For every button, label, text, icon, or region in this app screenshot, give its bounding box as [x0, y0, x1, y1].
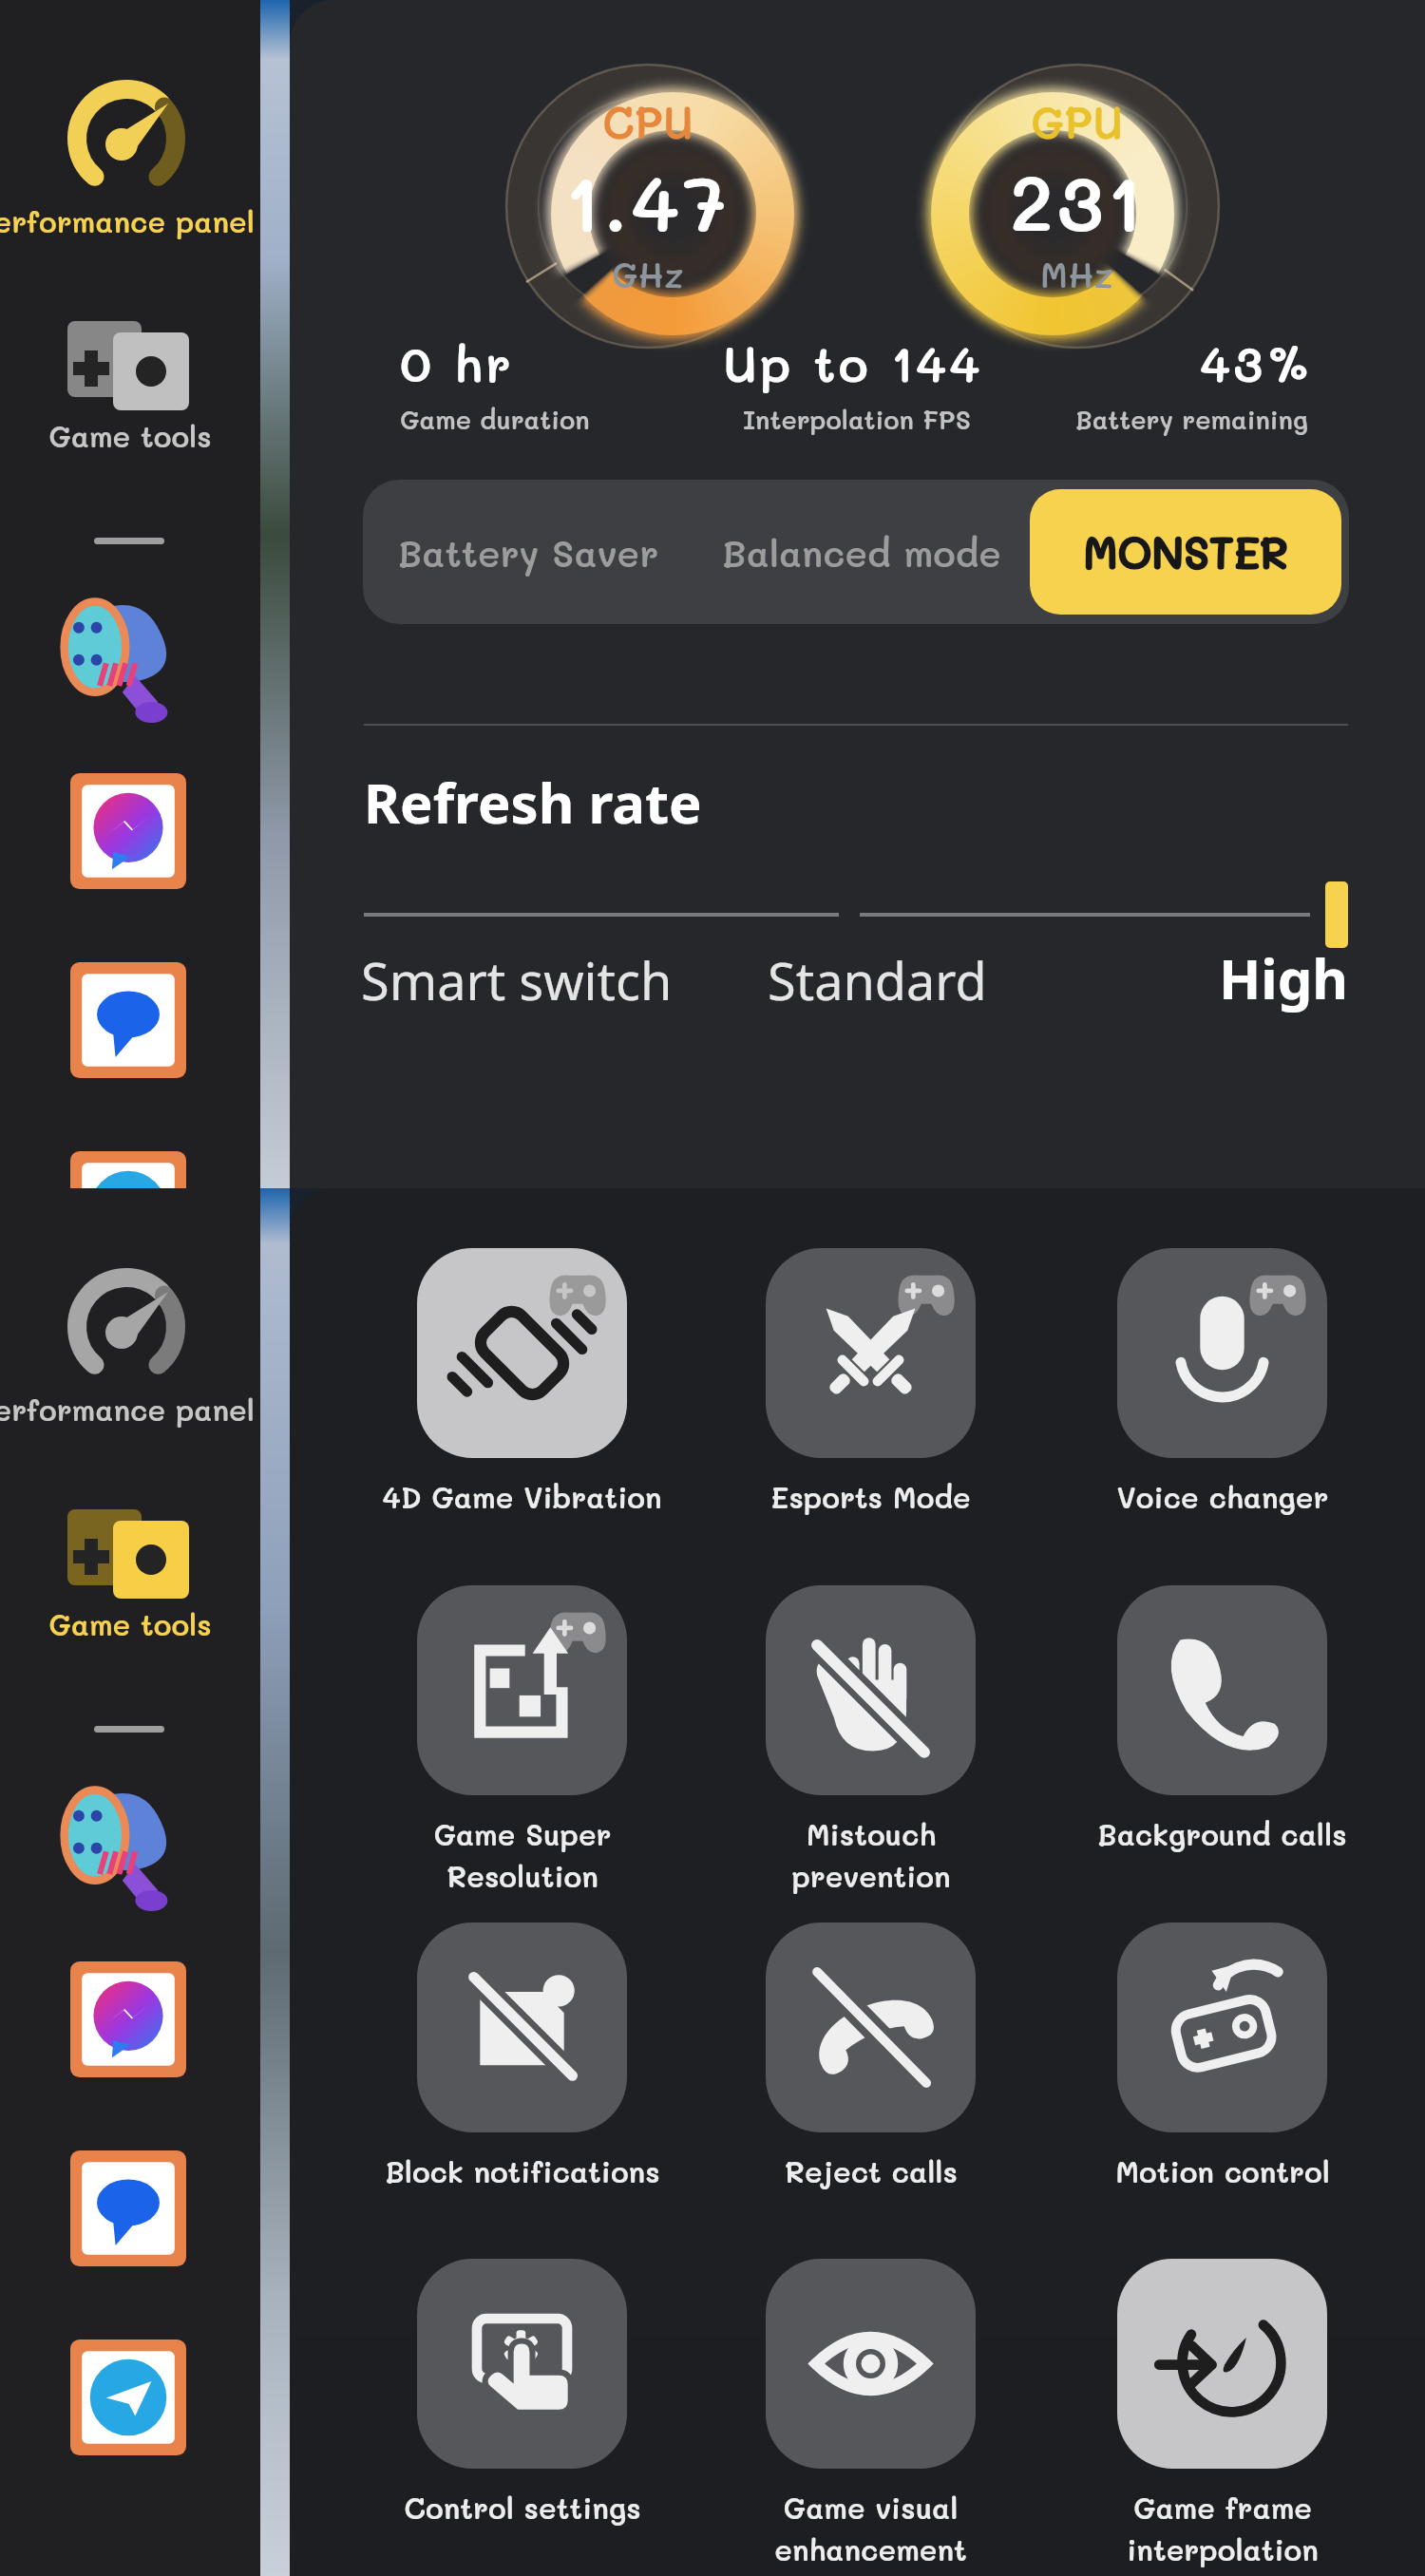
button[interactable]: Game tools — [0, 1483, 260, 1701]
staticText: 43% — [1200, 331, 1315, 395]
staticText: Performance panel — [0, 201, 259, 239]
button[interactable]: Game frame interpolation — [1048, 2259, 1396, 2567]
staticText: CPU — [602, 93, 693, 150]
staticText: 0 hr — [400, 331, 514, 395]
staticText: Smart switch — [361, 945, 673, 1015]
button[interactable]: Background calls — [1048, 1585, 1396, 1852]
staticText: High — [1219, 940, 1349, 1015]
staticText: 231 — [1010, 150, 1146, 252]
staticText: Game visual enhancement — [774, 2488, 967, 2567]
staticText: Up to 144 — [723, 331, 983, 395]
button[interactable]: Performance panel — [0, 76, 260, 294]
button[interactable]: Game tools — [0, 294, 260, 513]
button[interactable]: Reject calls — [696, 1923, 1045, 2189]
staticText: 4D Game Vibration — [382, 1477, 662, 1515]
button[interactable]: Mistouch prevention — [696, 1585, 1045, 1894]
button[interactable]: Control settings — [348, 2259, 696, 2526]
button[interactable]: Performance panel — [0, 1264, 260, 1483]
staticText: GPU — [1031, 93, 1124, 150]
button[interactable]: Balanced mode — [693, 480, 1030, 624]
staticText: Esports Mode — [770, 1477, 971, 1515]
staticText: Game tools — [0, 416, 263, 454]
staticText: Game duration — [400, 403, 590, 436]
staticText: Motion control — [1115, 2151, 1330, 2189]
staticText: GHz — [612, 252, 684, 296]
button[interactable]: Motion control — [1048, 1923, 1396, 2189]
staticText: 1.47 — [565, 150, 731, 252]
staticText: Battery Saver — [329, 528, 728, 577]
button[interactable]: Block notifications — [348, 1923, 696, 2189]
staticText: MHz — [1040, 252, 1114, 296]
staticText: Block notifications — [385, 2151, 660, 2189]
staticText: Game Super Resolution — [433, 1814, 612, 1894]
button[interactable]: Battery Saver — [363, 480, 693, 624]
staticText: Mistouch prevention — [791, 1814, 951, 1894]
staticText: Standard — [768, 945, 987, 1015]
button[interactable]: Game Super Resolution — [348, 1585, 696, 1894]
staticText: Interpolation FPS — [743, 403, 971, 436]
staticText: Refresh rate — [364, 765, 702, 840]
button[interactable]: Esports Mode — [696, 1248, 1045, 1515]
staticText: Voice changer — [1116, 1477, 1329, 1515]
button[interactable]: 4D Game Vibration — [348, 1248, 696, 1515]
button[interactable]: MONSTER — [1030, 489, 1341, 615]
staticText: Battery remaining — [1075, 403, 1308, 436]
staticText: Control settings — [404, 2488, 641, 2526]
staticText: MONSTER — [1083, 523, 1288, 580]
button[interactable]: Game visual enhancement — [696, 2259, 1045, 2567]
staticText: Game frame interpolation — [1127, 2488, 1319, 2567]
staticText: Background calls — [1097, 1814, 1347, 1852]
button[interactable]: Voice changer — [1048, 1248, 1396, 1515]
staticText: Reject calls — [785, 2151, 958, 2189]
staticText: Game tools — [0, 1604, 263, 1642]
staticText: Performance panel — [0, 1390, 259, 1428]
staticText: Balanced mode — [662, 528, 1061, 577]
